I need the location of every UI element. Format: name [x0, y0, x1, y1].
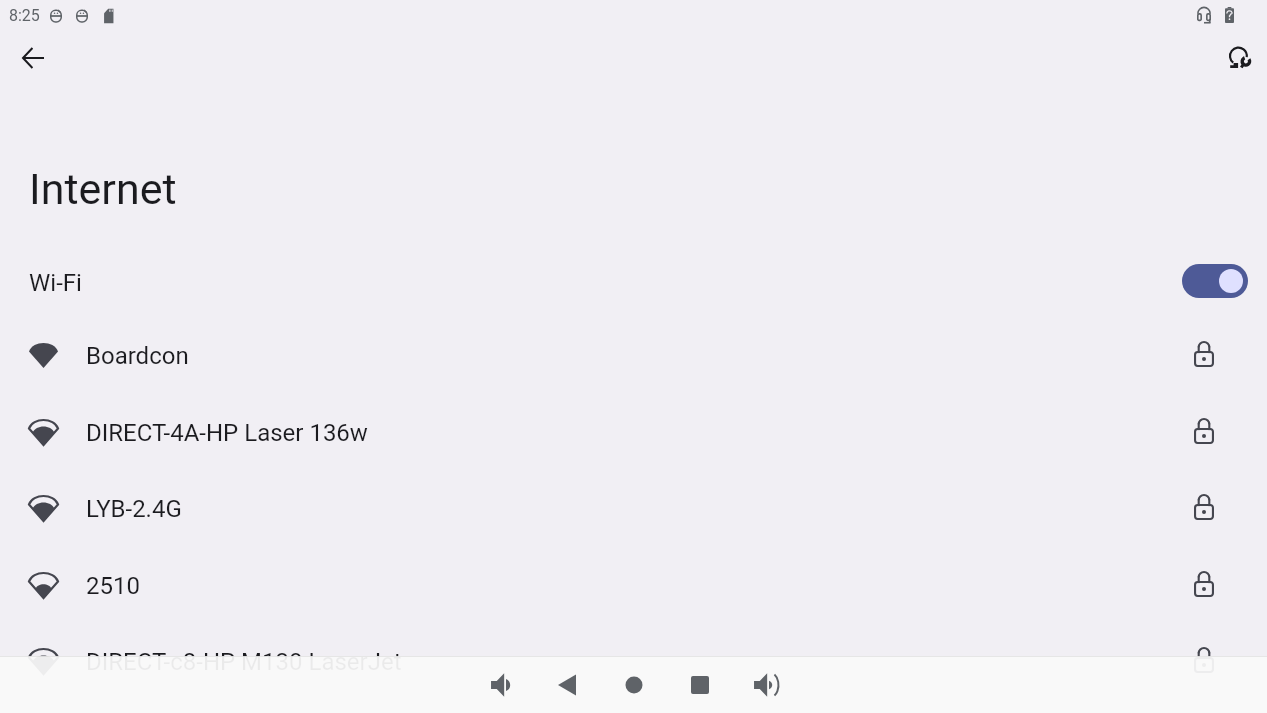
button[interactable]: Back [11, 36, 55, 80]
staticText: LYB-2.4G [86, 495, 182, 523]
button[interactable]: DIRECT-c8-HP M130 LaserJet [0, 623, 1267, 700]
staticText: DIRECT-c8-HP M130 LaserJet [86, 648, 402, 676]
staticText: Wi-Fi [29, 269, 82, 297]
button[interactable]: DIRECT-4A-HP Laser 136w [0, 394, 1267, 471]
button[interactable]: Recent apps [674, 656, 726, 713]
button[interactable]: Volume down [477, 656, 529, 713]
button[interactable]: Reset options [1218, 36, 1262, 80]
staticText: 8:25 [9, 6, 40, 25]
staticText: 2510 [86, 572, 140, 600]
button[interactable]: Volume up [740, 656, 792, 713]
button[interactable]: Home [608, 656, 660, 713]
button[interactable]: Back [541, 656, 593, 713]
button[interactable]: Wi-Fi [0, 248, 1267, 314]
staticText: Boardcon [86, 342, 189, 370]
button[interactable]: 2510 [0, 547, 1267, 624]
button[interactable]: Boardcon [0, 317, 1267, 394]
staticText: Internet [29, 164, 177, 214]
button[interactable]: Wi-Fi on [1182, 264, 1248, 298]
staticText: DIRECT-4A-HP Laser 136w [86, 419, 368, 447]
button[interactable]: LYB-2.4G [0, 470, 1267, 547]
